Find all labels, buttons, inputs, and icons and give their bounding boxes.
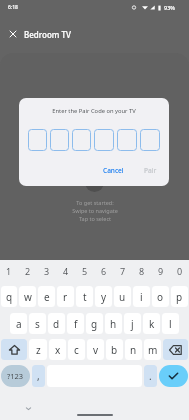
staticText: a: [16, 317, 22, 331]
button[interactable]: l: [162, 313, 179, 334]
staticText: s: [35, 317, 40, 331]
staticText: y: [101, 290, 107, 304]
staticText: q: [6, 290, 13, 304]
staticText: Pair: [144, 166, 157, 175]
button[interactable]: v: [87, 339, 104, 360]
staticText: k: [149, 317, 155, 331]
button[interactable]: o: [152, 286, 169, 307]
staticText: z: [36, 343, 41, 357]
button[interactable]: Enter: [159, 365, 188, 387]
staticText: ?123: [7, 371, 24, 381]
button[interactable]: r: [57, 286, 74, 307]
staticText: 0: [177, 265, 183, 277]
staticText: u: [119, 290, 126, 304]
button[interactable]: [72, 129, 91, 151]
button[interactable]: t: [76, 286, 93, 307]
staticText: f: [74, 317, 78, 331]
button[interactable]: [140, 129, 160, 151]
button[interactable]: y: [95, 286, 112, 307]
staticText: .: [149, 369, 152, 383]
staticText: g: [91, 317, 98, 331]
staticText: p: [176, 290, 183, 304]
button[interactable]: j: [124, 313, 141, 334]
button[interactable]: e: [38, 286, 55, 307]
staticText: 2: [25, 265, 31, 277]
button[interactable]: Pair: [140, 163, 161, 178]
button[interactable]: i: [133, 286, 150, 307]
staticText: 93%: [164, 4, 175, 11]
staticText: m: [148, 343, 158, 357]
button[interactable]: a: [10, 313, 27, 334]
button[interactable]: k: [143, 313, 160, 334]
staticText: 1: [6, 265, 12, 277]
button[interactable]: g: [86, 313, 103, 334]
button[interactable]: d: [48, 313, 65, 334]
button[interactable]: ,: [32, 365, 45, 387]
button[interactable]: Shift: [1, 339, 27, 360]
staticText: 5: [82, 265, 88, 277]
staticText: x: [55, 343, 61, 357]
button[interactable]: u: [114, 286, 131, 307]
button[interactable]: Close: [3, 24, 23, 44]
staticText: b: [111, 343, 118, 357]
button[interactable]: c: [68, 339, 85, 360]
staticText: 9: [158, 265, 164, 277]
staticText: v: [93, 343, 99, 357]
button[interactable]: p: [171, 286, 188, 307]
staticText: c: [74, 343, 79, 357]
staticText: t: [83, 290, 87, 304]
button[interactable]: Backspace: [163, 339, 188, 360]
staticText: 6: [101, 265, 107, 277]
button[interactable]: s: [29, 313, 46, 334]
button[interactable]: q: [1, 286, 17, 307]
staticText: d: [53, 317, 60, 331]
staticText: 4: [63, 265, 69, 277]
staticText: Bedroom TV: [24, 29, 71, 40]
staticText: j: [131, 317, 134, 331]
staticText: ,: [37, 369, 40, 383]
staticText: Enter the Pair Code on your TV: [19, 107, 169, 115]
staticText: h: [110, 317, 117, 331]
staticText: 6:18: [8, 4, 18, 11]
button[interactable]: ?123: [1, 365, 30, 387]
staticText: n: [130, 343, 137, 357]
staticText: 7: [120, 265, 126, 277]
button[interactable]: x: [49, 339, 66, 360]
staticText: i: [140, 290, 143, 304]
button[interactable]: Hide keyboard: [22, 402, 34, 414]
button[interactable]: .: [144, 365, 157, 387]
staticText: o: [157, 290, 164, 304]
button[interactable]: Cancel: [99, 163, 128, 178]
staticText: l: [169, 317, 172, 331]
button[interactable]: [28, 129, 47, 151]
button[interactable]: [94, 129, 114, 151]
staticText: r: [63, 290, 68, 304]
button[interactable]: m: [144, 339, 161, 360]
button[interactable]: w: [19, 286, 36, 307]
staticText: To get started: Swipe to navigate Tap to…: [72, 199, 118, 223]
button[interactable]: z: [29, 339, 47, 360]
button[interactable]: [117, 129, 137, 151]
button[interactable]: [50, 129, 69, 151]
staticText: 3: [44, 265, 50, 277]
staticText: w: [24, 290, 32, 304]
staticText: 8: [139, 265, 145, 277]
staticText: e: [44, 290, 50, 304]
button[interactable]: f: [67, 313, 84, 334]
button[interactable]: b: [106, 339, 123, 360]
button[interactable]: n: [125, 339, 142, 360]
button[interactable]: h: [105, 313, 122, 334]
staticText: Cancel: [103, 166, 124, 175]
